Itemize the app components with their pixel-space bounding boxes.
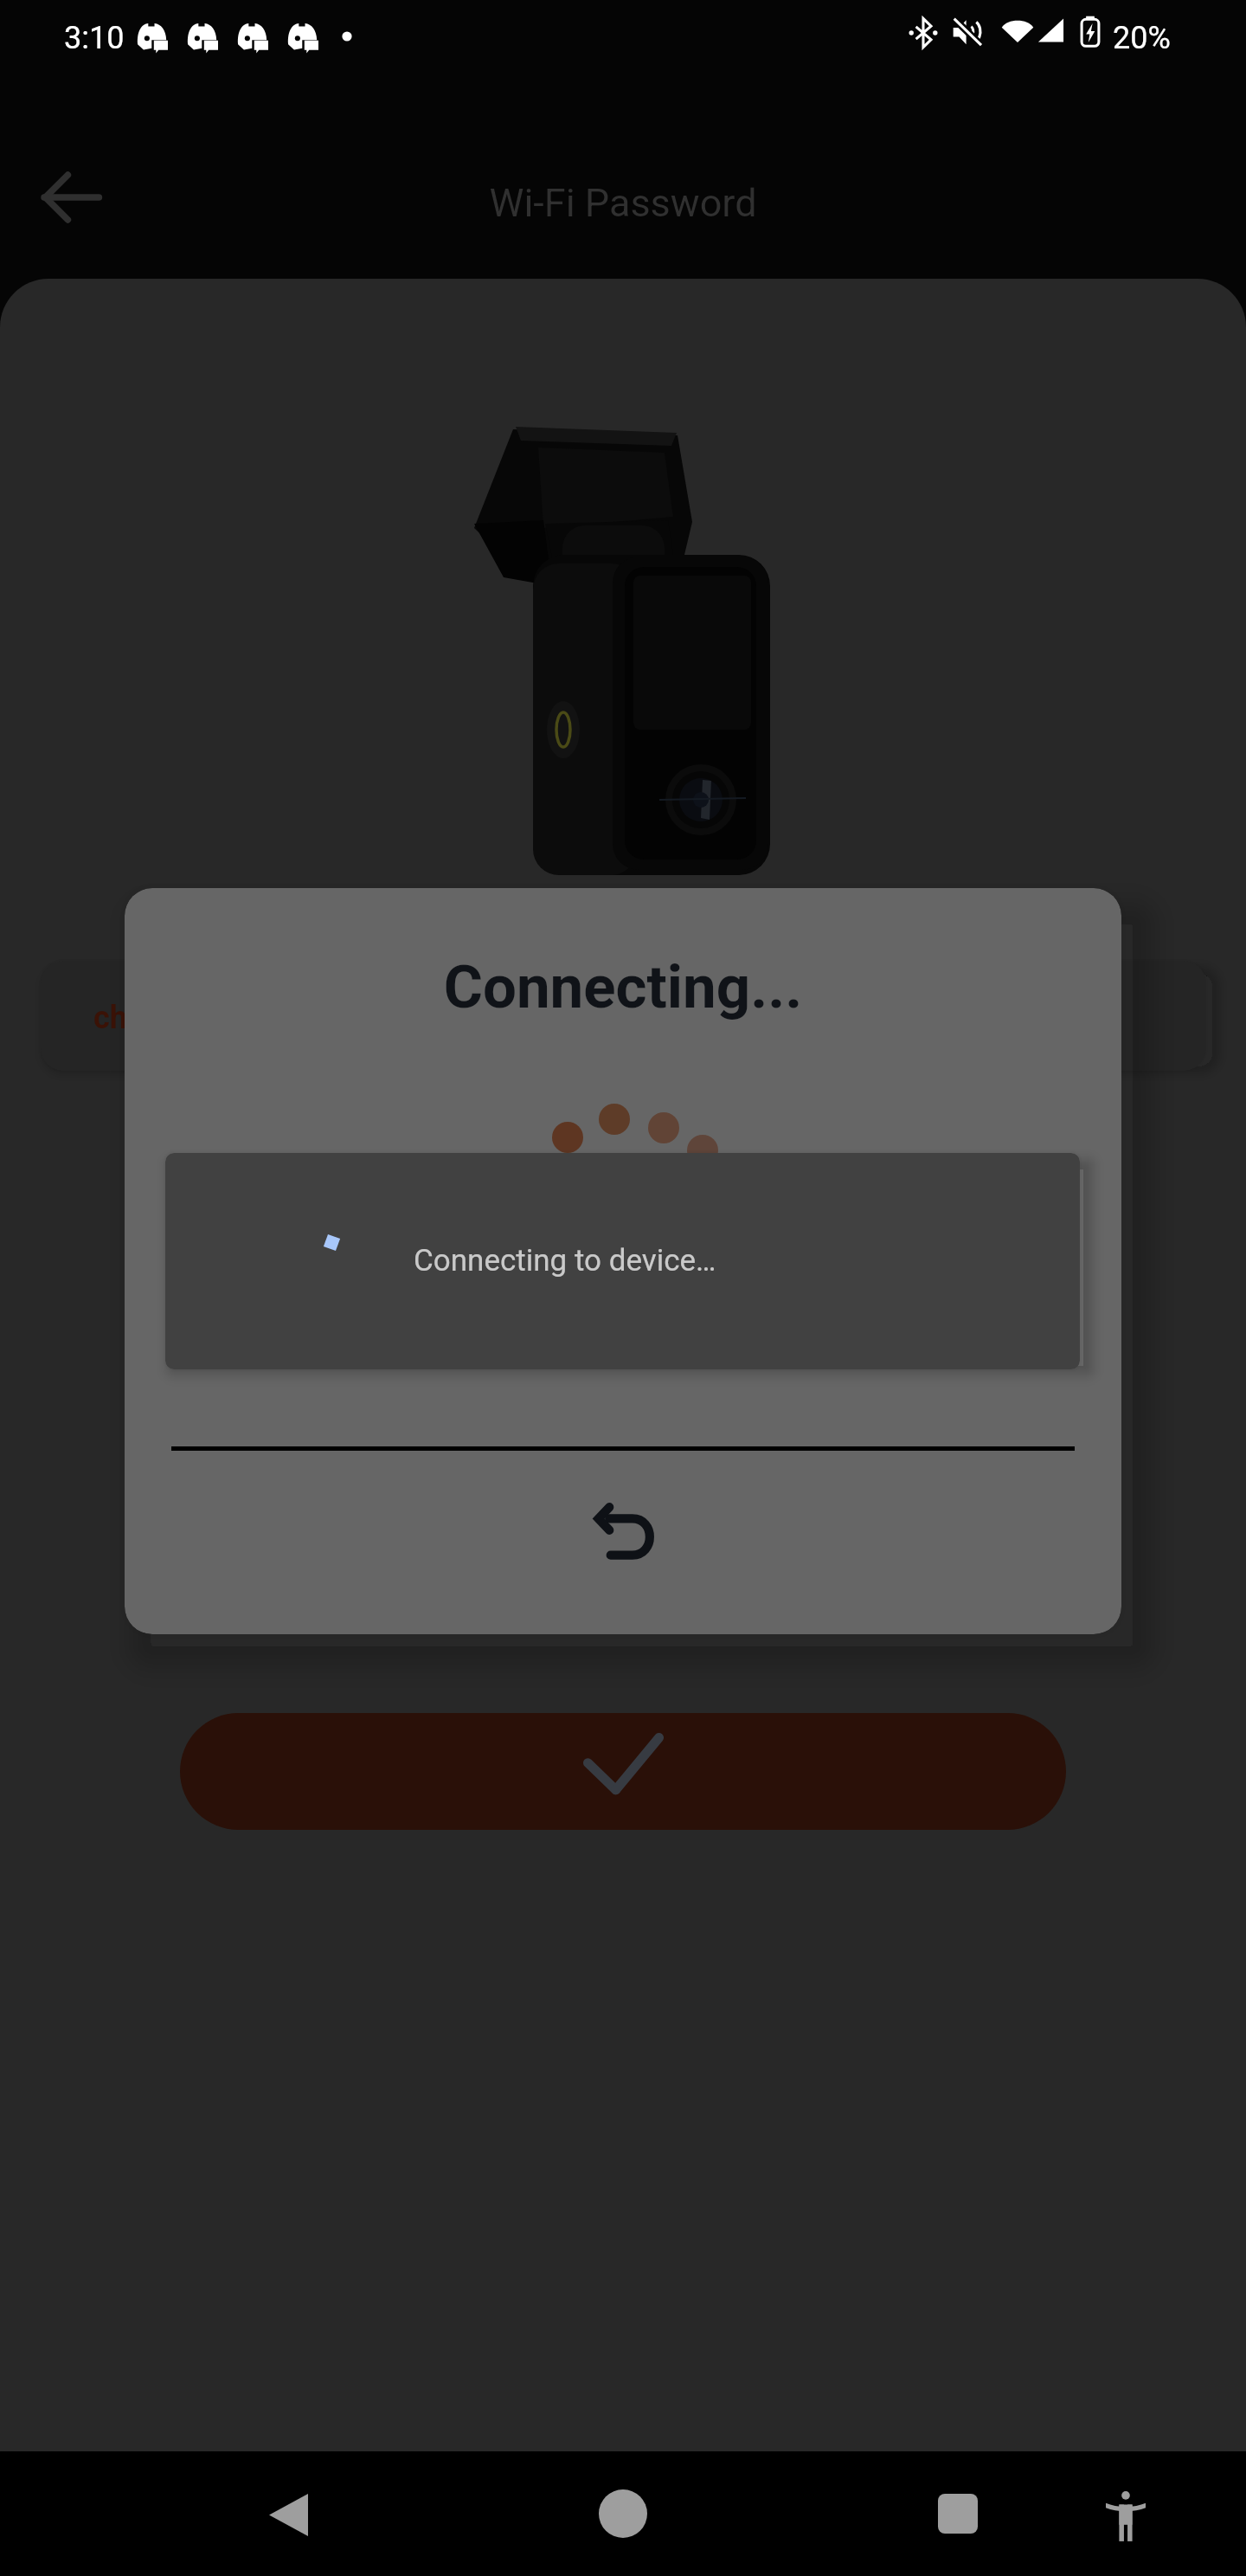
button[interactable]: Accessibility <box>1084 2470 1167 2553</box>
staticText: changeme <box>93 1000 240 1036</box>
button[interactable]: Home <box>581 2472 665 2555</box>
button[interactable]: Recent apps <box>916 2472 999 2555</box>
staticText: Wi-Fi Password <box>0 180 1246 226</box>
staticText: Connecting to device… <box>414 1243 716 1278</box>
staticText: Connecting... <box>125 952 1121 1022</box>
button[interactable]: Back <box>247 2473 330 2556</box>
staticText: 3:10 <box>64 20 125 56</box>
button[interactable]: changeme <box>41 961 1206 1071</box>
button[interactable]: Confirm <box>180 1713 1066 1830</box>
staticText: 20% <box>1113 20 1171 56</box>
button[interactable]: Undo <box>569 1477 680 1587</box>
button[interactable]: Back <box>29 156 112 239</box>
